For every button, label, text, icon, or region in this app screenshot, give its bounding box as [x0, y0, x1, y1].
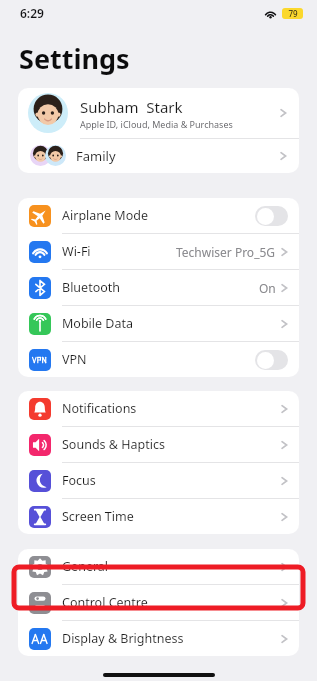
button[interactable]: Screen Time: [18, 499, 299, 534]
button[interactable]: Airplane Mode: [18, 198, 299, 233]
staticText: Airplane Mode: [62, 207, 148, 224]
staticText: Family: [76, 147, 280, 165]
staticText: General: [62, 558, 109, 575]
button[interactable]: Mobile Data: [18, 306, 299, 341]
staticText: On: [259, 280, 276, 296]
button[interactable]: Subham Stark: [18, 88, 299, 138]
staticText: 79: [288, 8, 298, 19]
staticText: Notifications: [62, 400, 137, 417]
button[interactable]: Wi-Fi: [18, 234, 299, 269]
button[interactable]: Notifications: [18, 391, 299, 426]
button[interactable]: VPN: [18, 342, 299, 377]
staticText: Mobile Data: [62, 315, 134, 332]
button[interactable]: Display & Brightness: [18, 621, 299, 656]
staticText: Sounds & Haptics: [62, 436, 165, 453]
staticText: Focus: [62, 472, 96, 489]
staticText: VPN: [62, 351, 87, 368]
button[interactable]: General: [18, 549, 299, 584]
staticText: Techwiser Pro_5G: [176, 244, 276, 260]
staticText: Screen Time: [62, 508, 134, 525]
staticText: Wi-Fi: [62, 243, 91, 260]
button[interactable]: Family: [18, 139, 299, 173]
button[interactable]: Focus: [18, 463, 299, 498]
staticText: Bluetooth: [62, 279, 121, 296]
staticText: Control Centre: [62, 594, 148, 611]
staticText: Display & Brightness: [62, 630, 184, 647]
button[interactable]: Sounds & Haptics: [18, 427, 299, 462]
button[interactable]: Bluetooth: [18, 270, 299, 305]
button[interactable]: Control Centre: [18, 585, 299, 620]
staticText: Apple ID, iCloud, Media & Purchases: [80, 118, 233, 130]
staticText: Subham Stark: [80, 97, 183, 117]
staticText: 6:29: [20, 5, 44, 21]
staticText: Settings: [19, 40, 130, 77]
